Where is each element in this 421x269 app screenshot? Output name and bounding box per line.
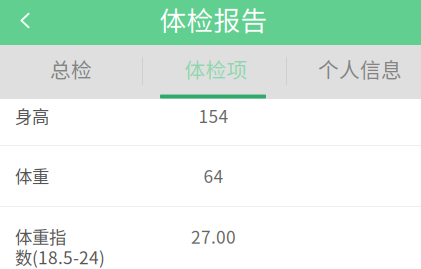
button[interactable]: 体检项 [142, 45, 286, 99]
staticText: 数(18.5-24) [15, 244, 105, 269]
button[interactable]: Back [0, 0, 42, 40]
staticText: 体检项 [184, 54, 247, 84]
staticText: 154 [198, 103, 228, 128]
button[interactable]: 体重 [0, 146, 421, 206]
button[interactable]: 个人信息 [286, 45, 421, 99]
staticText: 个人信息 [318, 54, 402, 84]
staticText: 体重指 [15, 224, 66, 249]
button[interactable]: 体重指 [0, 207, 421, 269]
staticText: 体重 [15, 163, 49, 188]
button[interactable]: 总检 [0, 45, 142, 99]
staticText: 64 [203, 163, 223, 188]
staticText: 身高 [15, 103, 49, 128]
staticText: 总检 [50, 54, 92, 84]
button[interactable]: 身高 [0, 99, 421, 145]
staticText: 27.00 [191, 224, 236, 249]
staticText: 体检报告 [159, 0, 267, 38]
